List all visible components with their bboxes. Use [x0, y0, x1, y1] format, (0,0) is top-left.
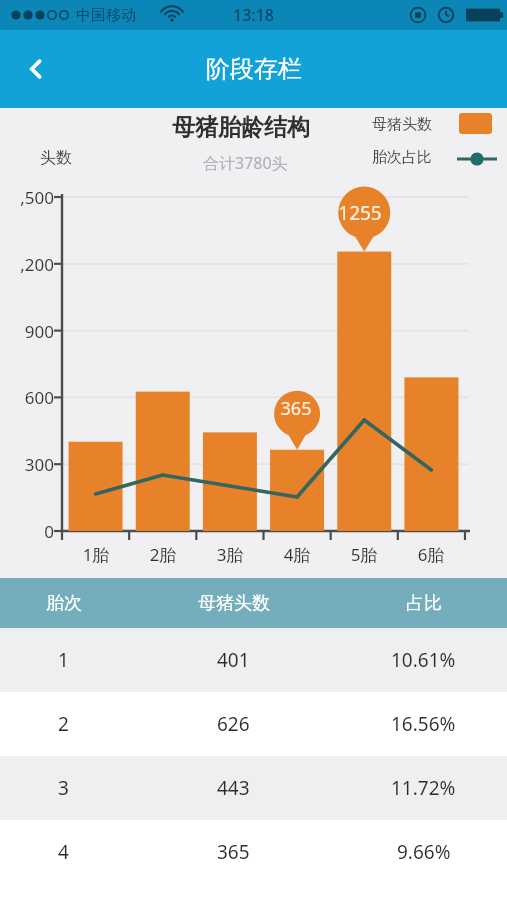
staticText: 4: [58, 839, 69, 865]
staticText: 0: [2, 520, 54, 543]
staticText: 合计3780头: [203, 152, 288, 174]
staticText: 胎次: [46, 592, 82, 615]
staticText: 600: [2, 386, 54, 409]
staticText: 443: [217, 775, 250, 801]
staticText: 900: [2, 320, 54, 343]
staticText: 3: [58, 775, 69, 801]
button[interactable]: 3: [0, 756, 507, 820]
staticText: 4胎: [270, 543, 324, 566]
button[interactable]: 2: [0, 692, 507, 756]
staticText: 5胎: [337, 543, 391, 566]
staticText: 头数: [40, 148, 72, 168]
staticText: 中国移动: [76, 6, 136, 25]
staticText: ,500: [2, 186, 54, 209]
staticText: 300: [2, 453, 54, 476]
staticText: 母猪头数: [198, 592, 270, 615]
staticText: 1: [58, 647, 69, 673]
staticText: 10.61%: [391, 647, 456, 673]
staticText: 胎次占比: [372, 148, 432, 167]
button[interactable]: 返回: [10, 43, 62, 95]
staticText: 626: [217, 711, 250, 737]
staticText: 365: [271, 396, 321, 421]
staticText: 16.56%: [391, 711, 456, 737]
staticText: 1胎: [69, 543, 123, 566]
staticText: 占比: [406, 592, 442, 615]
staticText: 9.66%: [397, 839, 451, 865]
staticText: 11.72%: [391, 775, 456, 801]
staticText: 365: [217, 839, 250, 865]
staticText: 401: [217, 647, 250, 673]
button[interactable]: 1: [0, 628, 507, 692]
staticText: ,200: [2, 253, 54, 276]
staticText: 3胎: [203, 543, 257, 566]
staticText: 13:18: [233, 4, 274, 26]
staticText: 1255: [333, 200, 387, 226]
staticText: 2胎: [136, 543, 190, 566]
staticText: 6胎: [404, 543, 458, 566]
staticText: 2: [58, 711, 69, 737]
staticText: 母猪头数: [372, 115, 432, 134]
staticText: 阶段存栏: [206, 54, 302, 84]
button[interactable]: 4: [0, 820, 507, 884]
staticText: 母猪胎龄结构: [172, 113, 310, 142]
